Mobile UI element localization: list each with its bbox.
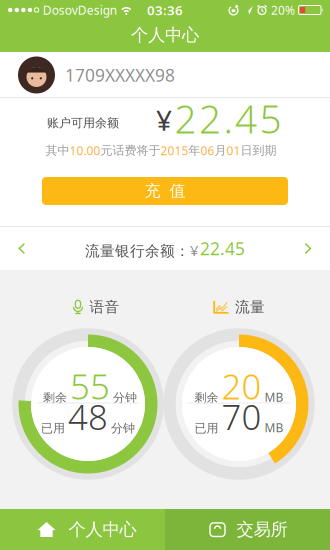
staticText: 其中 [45, 143, 69, 158]
staticText: 个人中心 [68, 519, 136, 540]
staticText: 06 [200, 142, 214, 158]
staticText: 流量 [235, 298, 265, 316]
staticText: 账户可用余额 [47, 116, 119, 130]
staticText: 语音 [89, 298, 119, 316]
staticText: 流量银行余额： [85, 242, 190, 260]
staticText: MB [264, 389, 283, 405]
staticText: 48 [68, 393, 108, 439]
staticText: 70 [221, 393, 261, 439]
staticText: 1709XXXXX98 [65, 63, 175, 86]
staticText: ¥ [156, 101, 172, 139]
staticText: 日到期 [240, 143, 276, 158]
staticText: 已用 [41, 421, 65, 435]
staticText: 分钟 [111, 421, 135, 435]
staticText: 元话费将于 [100, 143, 160, 158]
staticText: DosovDesign [43, 2, 117, 18]
staticText: 20 [221, 363, 261, 409]
staticText: 20% [271, 2, 295, 18]
staticText: 剩余 [43, 390, 67, 405]
staticText: 值 [169, 181, 185, 201]
staticText: 剩余 [194, 390, 218, 405]
button[interactable]: 1709XXXXX98 [0, 52, 330, 97]
staticText: 分钟 [113, 390, 137, 405]
staticText: 55 [70, 363, 110, 409]
staticText: 2015 [160, 142, 188, 158]
staticText: 22.45 [174, 93, 281, 144]
staticText: 22.45 [200, 237, 245, 260]
button[interactable]: 充 [42, 177, 288, 205]
staticText: 个人中心 [131, 24, 199, 46]
button[interactable]: 流量银行余额： [0, 227, 330, 270]
staticText: MB [264, 420, 283, 435]
staticText: 年 [188, 143, 200, 158]
staticText: 月 [214, 143, 226, 158]
staticText: ¥ [190, 240, 198, 260]
staticText: 交易所 [236, 519, 287, 540]
button[interactable]: 交易所 [165, 509, 330, 550]
button[interactable]: 个人中心 [0, 509, 165, 550]
staticText: 充 [144, 181, 160, 201]
staticText: 03:36 [147, 1, 183, 19]
staticText: 已用 [194, 421, 218, 435]
staticText: 10.00 [69, 142, 100, 158]
staticText: 01 [226, 142, 240, 158]
